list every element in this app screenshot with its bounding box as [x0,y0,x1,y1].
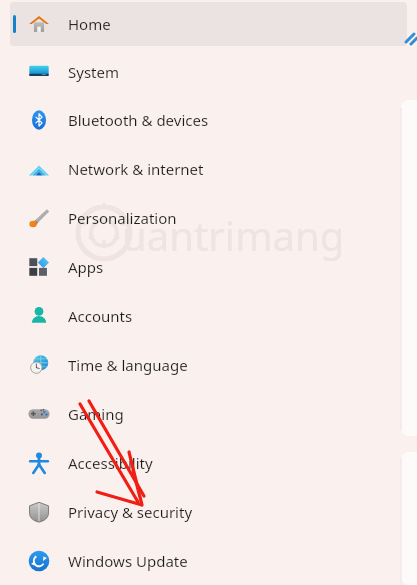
staticText: Home [68,14,111,34]
button[interactable]: Accounts [10,293,407,338]
staticText: Personalization [68,208,177,228]
staticText: Gaming [68,404,124,424]
other: Gaming [28,403,50,425]
staticText: Time & language [68,355,188,375]
other: Accessibility [28,452,50,474]
other: Apps [28,256,50,278]
other: System [28,61,50,83]
other: Personalization [28,207,50,229]
button[interactable]: Gaming [10,391,407,436]
other: Home [28,13,50,35]
button[interactable]: System [10,50,407,94]
button[interactable]: Bluetooth and devices [10,98,407,142]
button[interactable]: Time and language [10,342,407,387]
button[interactable]: Windows Update [10,538,407,583]
button[interactable]: Home [10,2,407,46]
other: Accounts [28,305,50,327]
staticText: Accessibility [68,453,153,473]
staticText: Windows Update [68,551,188,571]
other: Time and language [28,354,50,376]
button[interactable]: Network and internet [10,146,407,191]
button[interactable]: Privacy and security [10,489,407,534]
other: Windows Update [28,550,50,572]
button[interactable]: Apps [10,244,407,289]
staticText: uantrimang [122,208,345,262]
other: Privacy and security [28,501,50,523]
staticText: Privacy & security [68,502,193,522]
staticText: Bluetooth & devices [68,110,209,130]
other: Network and internet [28,158,50,180]
button[interactable]: Accessibility [10,440,407,485]
button[interactable]: Personalization [10,195,407,240]
staticText: Accounts [68,306,133,326]
other: Bluetooth and devices [28,109,50,131]
staticText: System [68,62,119,82]
staticText: Network & internet [68,159,204,179]
staticText: Apps [68,257,104,277]
